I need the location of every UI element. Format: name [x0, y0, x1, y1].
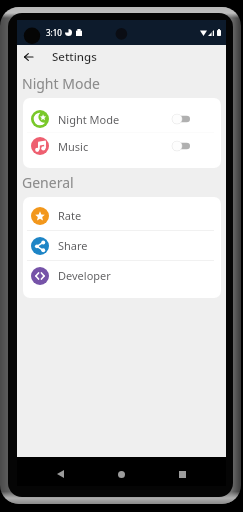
staticText: Settings: [52, 49, 97, 65]
button[interactable]: Back: [17, 45, 39, 69]
button[interactable]: Back: [47, 462, 74, 486]
button[interactable]: Music: [23, 133, 221, 159]
button[interactable]: Home: [108, 462, 135, 486]
staticText: Night Mode: [58, 112, 120, 127]
button[interactable]: Toggle: [171, 139, 190, 153]
button[interactable]: Rate: [23, 201, 221, 230]
button[interactable]: Night Mode: [23, 106, 221, 132]
button[interactable]: Recent apps: [169, 462, 196, 486]
staticText: General: [22, 173, 74, 192]
button[interactable]: Share: [23, 231, 221, 260]
button[interactable]: Developer: [23, 261, 221, 290]
staticText: Night Mode: [22, 74, 100, 93]
staticText: Music: [58, 139, 89, 154]
staticText: Rate: [58, 208, 82, 223]
staticText: Share: [58, 238, 88, 253]
button[interactable]: Toggle: [171, 112, 190, 126]
staticText: 3:10: [46, 27, 62, 38]
staticText: Developer: [58, 268, 111, 283]
